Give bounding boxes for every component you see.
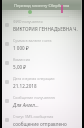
staticText: 5,00 ₽ bbox=[13, 64, 27, 70]
staticText: ФИО получателя bbox=[13, 19, 43, 24]
staticText: 1 000 ₽ bbox=[13, 45, 29, 51]
staticText: Для Ангел... bbox=[13, 102, 39, 108]
button[interactable]: Дата и время операции bbox=[2, 74, 81, 93]
staticText: 21.12.2018 bbox=[13, 83, 37, 89]
button[interactable]: Статус SMS-сообщения bbox=[2, 112, 81, 128]
staticText: ВИКТОРИЯ ГЕННАДЬЕВНА Ч. bbox=[13, 26, 78, 32]
staticText: Статус SMS-сообщения bbox=[13, 114, 54, 119]
staticText: Сообщение получателю bbox=[13, 95, 56, 100]
staticText: Перевод клиенту Сбербанка bbox=[14, 3, 70, 8]
staticText: сообщение отправлено bbox=[13, 121, 67, 127]
staticText: Дата и время операции bbox=[13, 76, 55, 81]
button[interactable]: ФИО получателя bbox=[2, 17, 81, 36]
button[interactable]: Сумма в валюте счета bbox=[2, 36, 81, 55]
button[interactable]: Сообщение получателю bbox=[2, 93, 81, 112]
staticText: Комиссия bbox=[13, 57, 31, 62]
button[interactable]: Комиссия bbox=[2, 55, 81, 74]
staticText: Сумма в валюте счета bbox=[13, 38, 52, 43]
